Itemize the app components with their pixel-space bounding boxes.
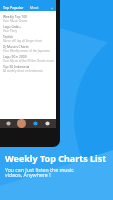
button[interactable]: Dj Musics Charts bbox=[0, 43, 56, 53]
button[interactable]: Lagu 90 n 2000 bbox=[0, 53, 56, 63]
button[interactable]: Microphone bbox=[44, 120, 51, 127]
staticText: Top 50 Indonesia bbox=[3, 64, 30, 68]
staticText: Your Party bbox=[3, 29, 18, 33]
button[interactable]: Profile bbox=[17, 119, 26, 128]
staticText: Your Weekly music of the Japanese music bbox=[3, 49, 56, 53]
staticText: Lagu 90 n 2000 bbox=[3, 54, 27, 58]
staticText: You can just listen the music videos, An… bbox=[5, 166, 74, 179]
button[interactable]: Teplok bbox=[0, 33, 56, 43]
staticText: All weekly chart on Indonesia bbox=[3, 69, 43, 73]
staticText: Dj Musics Charts bbox=[3, 44, 29, 48]
staticText: Weekly Top 100 bbox=[3, 14, 28, 18]
button[interactable]: Weekly Top 100 bbox=[0, 13, 56, 23]
staticText: Weekly Top Charts List bbox=[5, 152, 107, 164]
button[interactable]: Top Popular bbox=[3, 5, 24, 10]
staticText: Music off. lag all Singer chart bbox=[3, 39, 43, 43]
staticText: Most Popular bbox=[30, 5, 52, 10]
button[interactable]: Home bbox=[5, 120, 12, 127]
button[interactable]: Lagu Galau bbox=[0, 23, 56, 33]
staticText: Your Music Charts bbox=[3, 19, 28, 23]
staticText: Lagu Galau bbox=[3, 24, 21, 28]
button[interactable]: Top 50 Indonesia bbox=[0, 63, 56, 73]
staticText: Teplok bbox=[3, 34, 14, 38]
staticText: Your Music of the 90 the Charts music bbox=[3, 59, 55, 63]
button[interactable]: Most Popular bbox=[30, 5, 52, 10]
button[interactable]: Library bbox=[32, 120, 39, 127]
staticText: Top Popular bbox=[3, 5, 24, 10]
